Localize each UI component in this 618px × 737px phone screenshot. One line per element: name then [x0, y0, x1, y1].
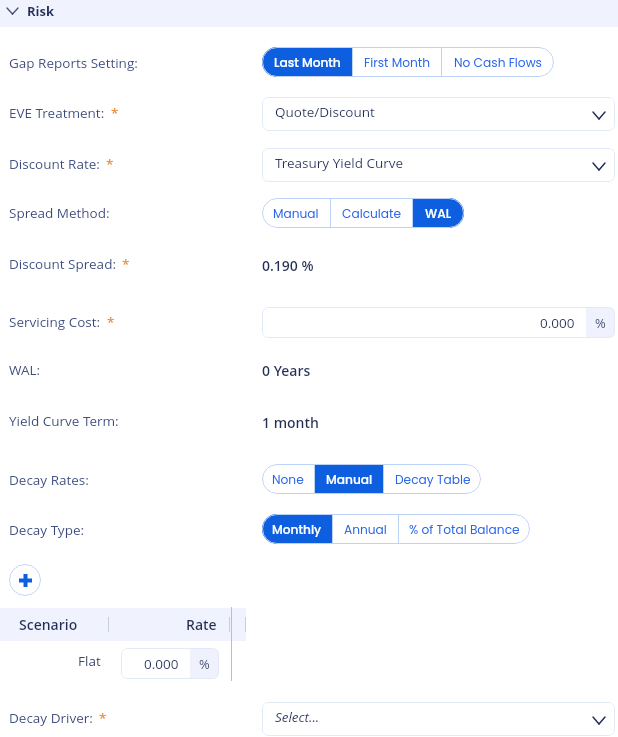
staticText: Discount Spread: [9, 255, 116, 273]
staticText: Decay Type: [9, 521, 85, 539]
button[interactable]: WAL [413, 198, 464, 228]
staticText: Decay Rates: [9, 471, 89, 489]
button[interactable]: No Cash Flows [442, 47, 554, 77]
button[interactable]: Manual [315, 464, 383, 494]
staticText: EVE Treatment: [9, 104, 105, 122]
staticText: Risk [27, 2, 55, 20]
staticText: Calculate [342, 205, 402, 222]
staticText: Last Month [274, 54, 341, 71]
staticText: * [106, 155, 114, 173]
staticText: * [111, 104, 119, 122]
button[interactable]: Add scenario [9, 564, 41, 596]
staticText: * [122, 255, 130, 273]
staticText: Flat [78, 652, 101, 670]
staticText: Spread Method: [9, 204, 110, 222]
button[interactable]: Treasury Yield Curve [262, 148, 615, 182]
staticText: 0.000 [144, 655, 179, 673]
staticText: 0.190 % [262, 256, 314, 275]
staticText: Yield Curve Term: [9, 412, 119, 430]
staticText: Servicing Cost: [9, 313, 101, 331]
button[interactable]: Annual [333, 514, 398, 544]
staticText: Decay Table [395, 471, 471, 488]
staticText: Quote/Discount [275, 103, 375, 121]
staticText: 0.000 [540, 314, 575, 332]
button[interactable]: Calculate [331, 198, 412, 228]
staticText: Gap Reports Setting: [9, 54, 138, 72]
staticText: Manual [326, 471, 373, 488]
staticText: % [595, 314, 606, 332]
staticText: Select... [275, 708, 320, 726]
staticText: First Month [364, 54, 431, 71]
staticText: None [272, 471, 304, 488]
button[interactable]: Select... [262, 702, 615, 736]
button[interactable]: Quote/Discount [262, 97, 615, 131]
staticText: 0 Years [262, 361, 311, 380]
button[interactable]: 0.000 [121, 648, 190, 679]
button[interactable]: First Month [353, 47, 441, 77]
staticText: No Cash Flows [454, 54, 542, 71]
button[interactable]: Monthly [262, 514, 332, 544]
staticText: % [199, 655, 210, 673]
staticText: Decay Driver: [9, 709, 93, 727]
staticText: Manual [273, 205, 319, 222]
staticText: 1 month [262, 413, 319, 432]
staticText: Annual [344, 521, 387, 538]
staticText: * [99, 709, 107, 727]
button[interactable]: Risk [0, 0, 618, 27]
staticText: Scenario [19, 615, 78, 634]
staticText: WAL [425, 205, 452, 222]
button[interactable]: Last Month [262, 47, 352, 77]
staticText: Rate [186, 615, 217, 634]
button[interactable]: None [262, 464, 314, 494]
button[interactable]: 0.000 [262, 307, 586, 338]
staticText: * [107, 313, 115, 331]
button[interactable]: Decay Table [384, 464, 481, 494]
staticText: % of Total Balance [409, 521, 520, 538]
button[interactable]: % of Total Balance [399, 514, 530, 544]
staticText: WAL: [9, 361, 41, 379]
staticText: Treasury Yield Curve [275, 154, 404, 172]
staticText: Monthly [272, 521, 322, 538]
staticText: Discount Rate: [9, 155, 100, 173]
button[interactable]: Manual [262, 198, 330, 228]
